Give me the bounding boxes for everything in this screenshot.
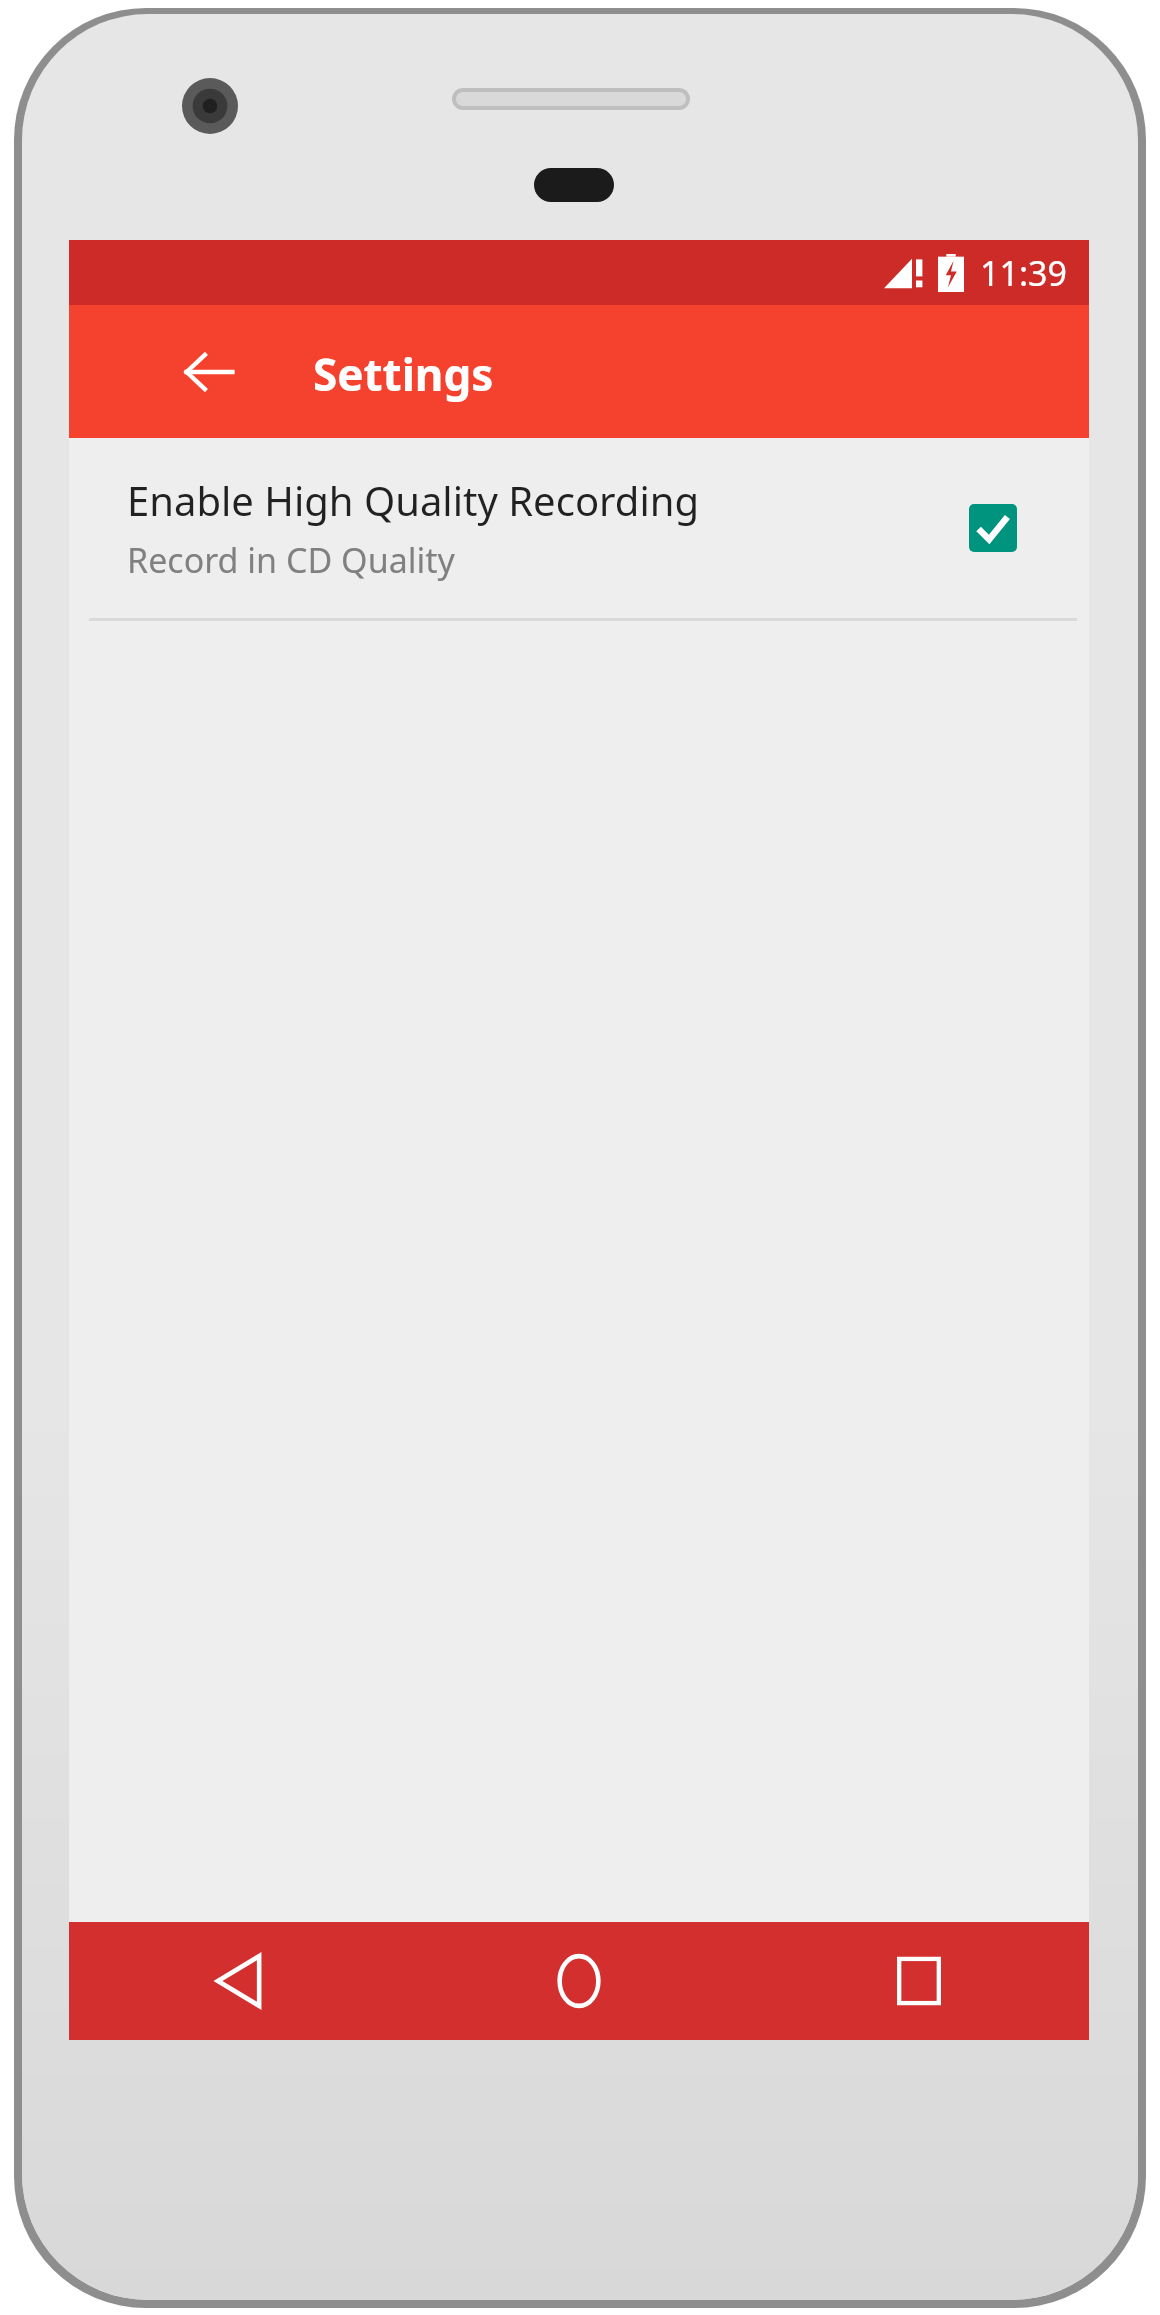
staticText: 11:39 — [980, 250, 1067, 296]
staticText: Record in CD Quality — [127, 537, 455, 583]
button[interactable]: Recent apps — [749, 1922, 1089, 2040]
button[interactable]: Back — [69, 1922, 409, 2040]
staticText: Settings — [313, 344, 494, 404]
button[interactable]: Enable High Quality Recording toggle — [945, 480, 1041, 576]
button[interactable]: Home — [409, 1922, 749, 2040]
button[interactable]: Enable High Quality Recording — [69, 438, 1089, 618]
staticText: Enable High Quality Recording — [127, 473, 700, 527]
button[interactable]: Back — [159, 322, 259, 422]
